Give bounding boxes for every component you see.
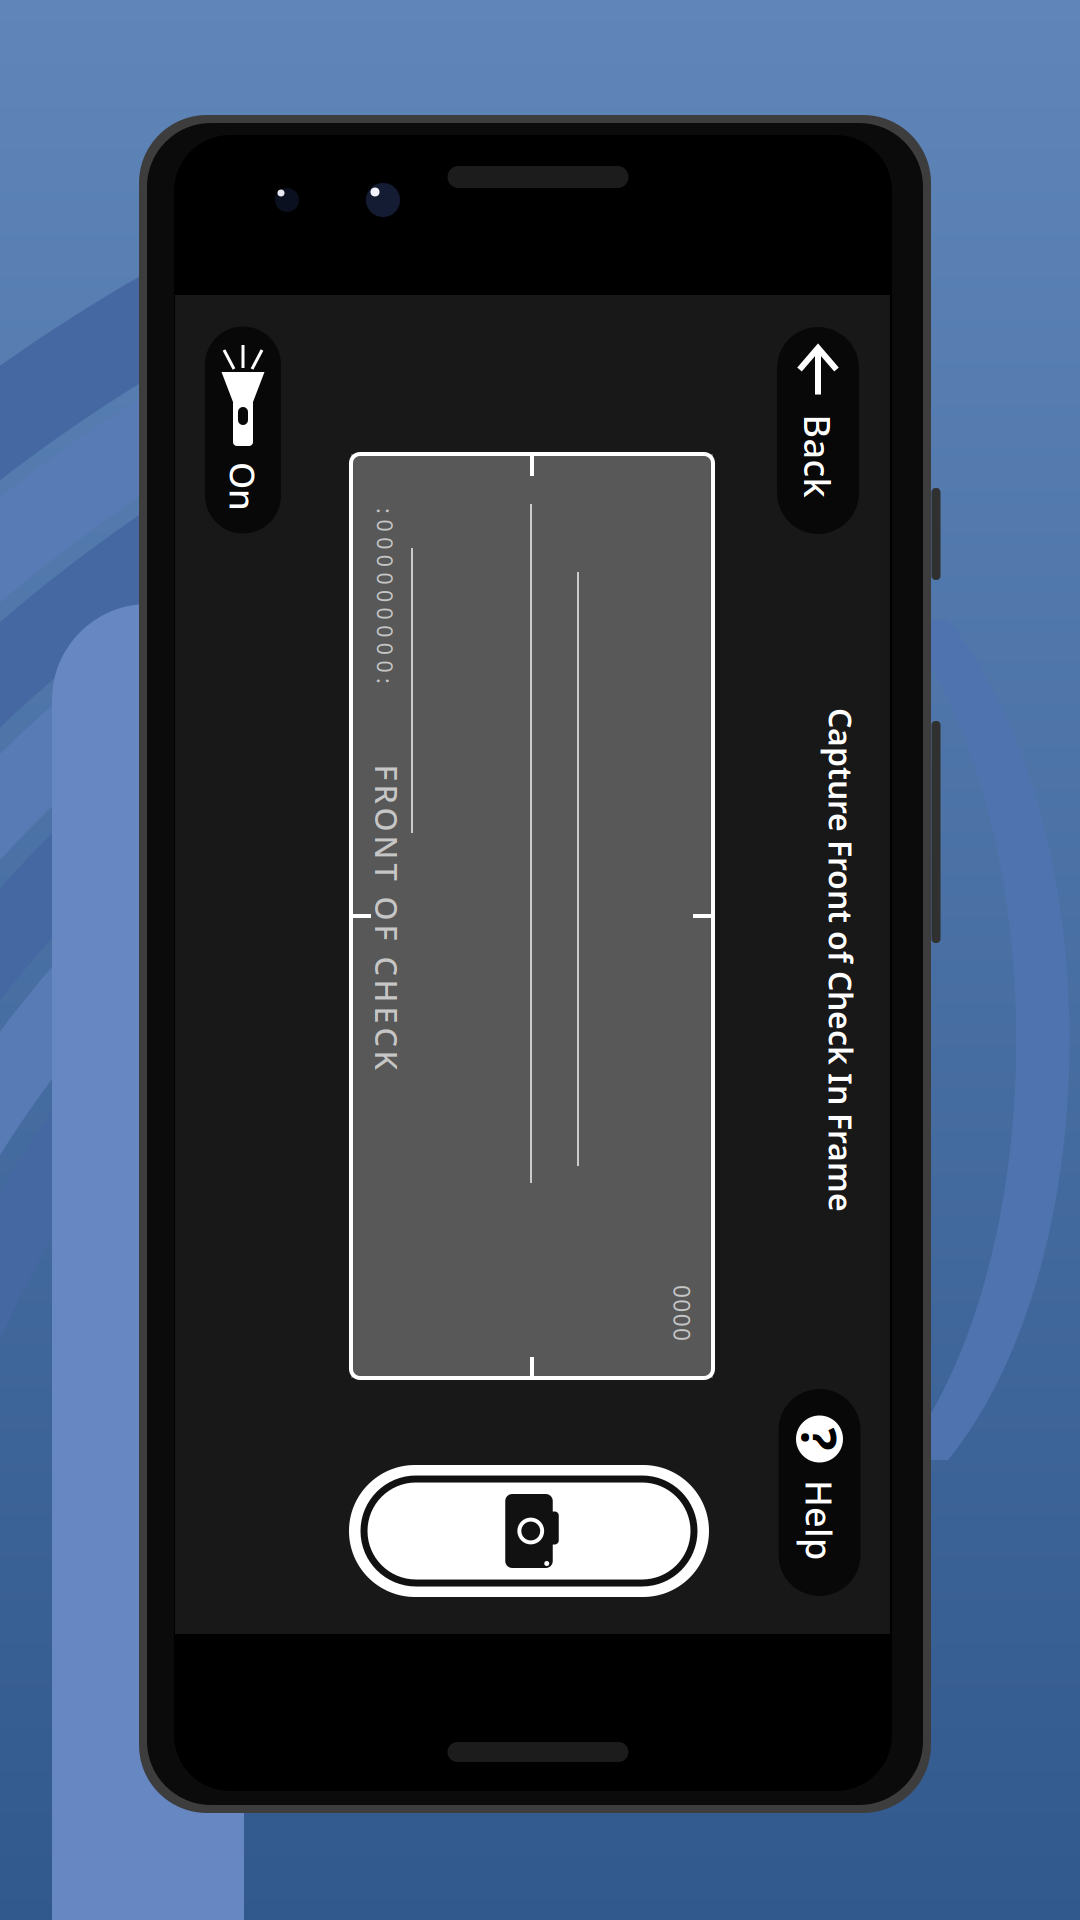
button[interactable]: Flashlight On — [205, 326, 281, 533]
button[interactable]: Back — [777, 327, 859, 534]
staticText: Back — [776, 432, 859, 480]
staticText: 0000 — [901, 751, 957, 781]
button[interactable]: Capture — [349, 1465, 709, 1597]
staticText: :000000000: — [124, 1049, 300, 1077]
staticText: On — [218, 463, 267, 509]
button[interactable]: ? — [778, 1389, 860, 1596]
staticText: ? — [808, 1407, 831, 1471]
staticText: Help — [779, 1496, 859, 1544]
staticText: Capture Front of Check In Frame — [589, 939, 1080, 981]
staticText: FRONT OF CHECK — [380, 1041, 685, 1081]
